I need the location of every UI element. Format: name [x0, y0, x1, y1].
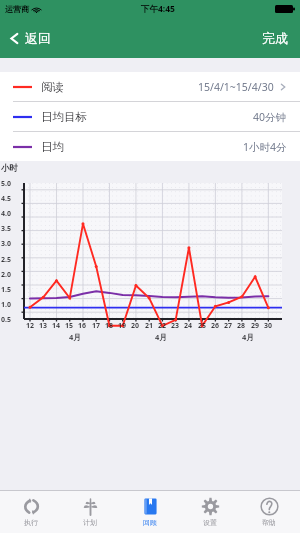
button[interactable]: 返回 [0, 24, 63, 52]
staticText: 2.5 [1, 255, 11, 265]
staticText: 2.0 [1, 270, 11, 280]
button[interactable]: 阅读 [0, 72, 300, 101]
button[interactable]: 设置 [181, 491, 239, 533]
staticText: 4.0 [1, 209, 11, 219]
staticText: 29 [251, 321, 260, 331]
staticText: 14 [52, 321, 61, 331]
staticText: 阅读 [41, 80, 64, 94]
staticText: 3.0 [1, 239, 11, 249]
staticText: 12 [26, 321, 35, 331]
staticText: 0.5 [1, 315, 11, 325]
staticText: 25 [198, 321, 207, 331]
staticText: 17 [92, 321, 101, 331]
staticText: 21 [145, 321, 154, 331]
button[interactable]: 计划 [61, 491, 119, 533]
staticText: 5.0 [1, 179, 11, 189]
staticText: 4月 [155, 332, 167, 342]
staticText: 执行 [24, 518, 38, 527]
staticText: 日均目标 [41, 110, 87, 124]
staticText: 30 [264, 321, 273, 331]
staticText: 28 [237, 321, 246, 331]
staticText: 4.5 [1, 194, 11, 204]
staticText: 16 [78, 321, 87, 331]
staticText: 设置 [203, 518, 217, 527]
button[interactable]: 日均 [0, 132, 300, 161]
button[interactable]: 回顾 [121, 491, 179, 533]
staticText: 帮助 [262, 518, 276, 527]
button[interactable]: 日均目标 [0, 102, 300, 131]
staticText: 22 [158, 321, 167, 331]
staticText: 下午4:45 [141, 3, 175, 15]
button[interactable]: 完成 [250, 22, 300, 54]
staticText: 23 [171, 321, 180, 331]
staticText: 24 [184, 321, 193, 331]
staticText: 4月 [69, 332, 81, 342]
staticText: 27 [224, 321, 233, 331]
staticText: 1小时4分 [243, 140, 287, 154]
staticText: 18 [105, 321, 114, 331]
staticText: 1.5 [1, 285, 11, 295]
button[interactable]: 执行 [2, 491, 60, 533]
staticText: 40分钟 [253, 110, 287, 124]
staticText: 15/4/1~15/4/30 [198, 80, 274, 94]
staticText: 15 [65, 321, 74, 331]
staticText: 4月 [242, 332, 254, 342]
staticText: 运营商 [5, 4, 29, 14]
staticText: 20 [131, 321, 140, 331]
staticText: 计划 [83, 518, 97, 527]
staticText: 3.5 [1, 224, 11, 234]
staticText: 返回 [25, 30, 51, 46]
staticText: 1.0 [1, 300, 11, 310]
staticText: 回顾 [143, 518, 157, 527]
staticText: 小时 [1, 163, 18, 174]
button[interactable]: 帮助 [240, 491, 298, 533]
staticText: 13 [39, 321, 48, 331]
staticText: 26 [211, 321, 220, 331]
staticText: 19 [118, 321, 127, 331]
staticText: 完成 [262, 30, 288, 46]
staticText: 日均 [41, 140, 64, 154]
